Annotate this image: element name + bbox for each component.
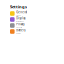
- button[interactable]: Display: [10, 17, 48, 22]
- button[interactable]: Privacy: [10, 23, 48, 28]
- staticText: Power: [16, 33, 21, 34]
- button[interactable]: General: [10, 11, 48, 16]
- button[interactable]: Battery: [10, 29, 48, 34]
- staticText: Display: [16, 17, 25, 20]
- staticText: Settings: [10, 4, 27, 9]
- staticText: About: [16, 15, 20, 16]
- staticText: Privacy: [16, 23, 24, 26]
- staticText: Battery: [16, 29, 25, 32]
- staticText: General: [16, 11, 27, 14]
- staticText: Security: [16, 27, 22, 28]
- staticText: Brightness: [16, 21, 24, 22]
